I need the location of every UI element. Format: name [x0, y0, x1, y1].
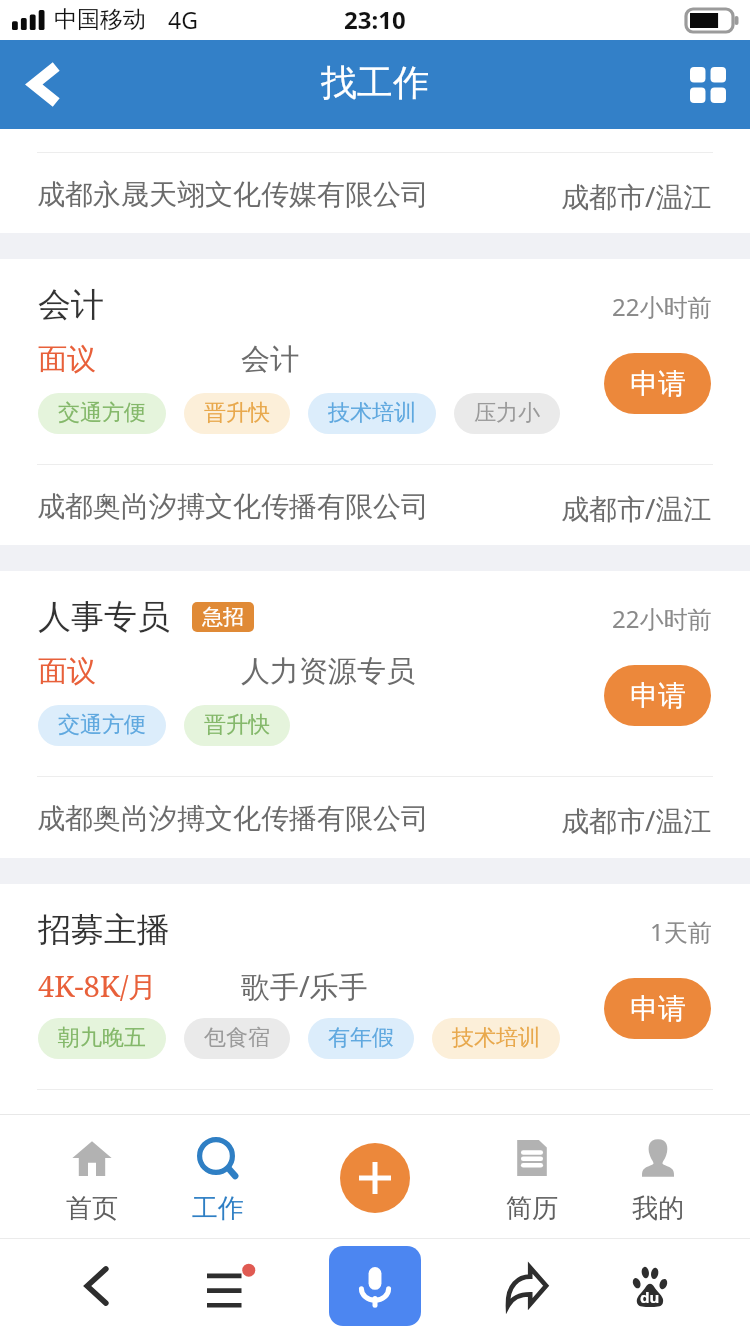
- staticText: 4G: [168, 4, 198, 35]
- staticText: 成都市/温江: [561, 801, 712, 839]
- button[interactable]: Add: [340, 1143, 410, 1213]
- button[interactable]: 人事专员: [0, 571, 750, 858]
- button[interactable]: Voice search: [329, 1246, 421, 1326]
- staticText: 晋升快: [204, 399, 270, 427]
- staticText: 成都奥尚汐搏文化传播有限公司: [37, 489, 429, 524]
- staticText: 工作: [192, 1192, 244, 1225]
- staticText: 交通方便: [58, 711, 146, 739]
- staticText: 朝九晚五: [58, 1024, 146, 1052]
- staticText: 中国移动: [54, 5, 146, 34]
- staticText: 急招: [202, 604, 244, 630]
- staticText: 申请: [630, 678, 686, 713]
- staticText: 会计: [241, 341, 299, 378]
- staticText: 歌手/乐手: [241, 966, 368, 1003]
- staticText: 交通方便: [58, 399, 146, 427]
- staticText: 找工作: [321, 60, 429, 105]
- staticText: 1天前: [650, 915, 712, 948]
- staticText: 首页: [66, 1192, 118, 1225]
- button[interactable]: Baidu: [600, 1238, 700, 1334]
- staticText: 技术培训: [452, 1024, 540, 1052]
- button[interactable]: 简历: [469, 1114, 595, 1238]
- button[interactable]: 招募主播: [0, 884, 750, 1114]
- staticText: 22小时前: [612, 290, 712, 323]
- button[interactable]: 工作: [155, 1114, 281, 1238]
- button[interactable]: 首页: [29, 1114, 155, 1238]
- button[interactable]: Back: [46, 1238, 146, 1334]
- staticText: 我的: [632, 1192, 684, 1225]
- staticText: 压力小: [474, 399, 540, 427]
- staticText: 23:10: [344, 3, 406, 36]
- button[interactable]: Menu: [174, 1238, 274, 1334]
- button[interactable]: 会计: [0, 259, 750, 545]
- button[interactable]: Grid view: [666, 40, 750, 129]
- button[interactable]: 申请: [604, 665, 711, 726]
- staticText: 面议: [38, 341, 96, 378]
- staticText: 成都市/温江: [561, 177, 712, 215]
- button[interactable]: 申请: [604, 353, 711, 414]
- staticText: 晋升快: [204, 711, 270, 739]
- button[interactable]: Back: [0, 40, 90, 129]
- staticText: 成都市/温江: [561, 489, 712, 527]
- staticText: 申请: [630, 366, 686, 401]
- button[interactable]: 成都永晟天翊文化传媒有限公司: [0, 129, 750, 233]
- staticText: 人事专员: [38, 596, 170, 637]
- staticText: 会计: [38, 284, 104, 325]
- staticText: du: [640, 1287, 660, 1307]
- staticText: 人力资源专员: [241, 653, 415, 690]
- staticText: 成都奥尚汐搏文化传播有限公司: [37, 801, 429, 836]
- staticText: 申请: [630, 991, 686, 1026]
- staticText: 4K-8K/月: [38, 966, 158, 1003]
- button[interactable]: Share: [476, 1238, 576, 1334]
- staticText: 成都永晟天翊文化传媒有限公司: [37, 177, 429, 212]
- staticText: 技术培训: [328, 399, 416, 427]
- staticText: 面议: [38, 653, 96, 690]
- staticText: 简历: [506, 1192, 558, 1225]
- button[interactable]: 我的: [595, 1114, 721, 1238]
- staticText: 有年假: [328, 1024, 394, 1052]
- staticText: 招募主播: [38, 909, 170, 950]
- staticText: 22小时前: [612, 602, 712, 635]
- button[interactable]: 申请: [604, 978, 711, 1039]
- staticText: 包食宿: [204, 1024, 270, 1052]
